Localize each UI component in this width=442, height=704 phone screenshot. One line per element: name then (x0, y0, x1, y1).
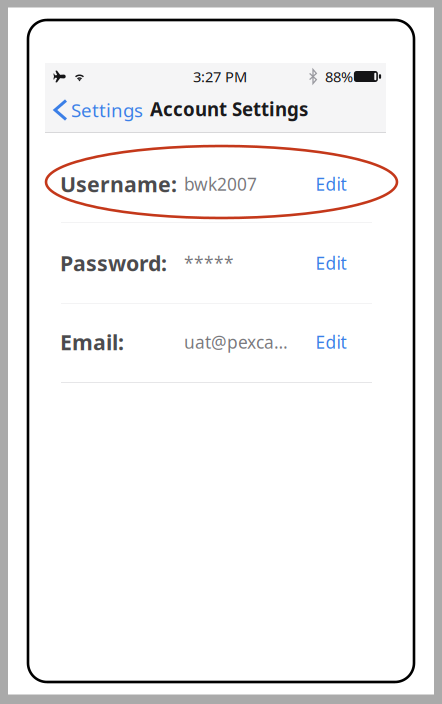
staticText: 3:27 PM (193, 67, 247, 86)
button[interactable]: Password: (0, 0, 442, 704)
staticText: Email: (60, 328, 124, 356)
button[interactable]: Settings (55, 92, 149, 128)
staticText: uat@pexca… (184, 330, 288, 353)
staticText: Account Settings (150, 97, 308, 121)
staticText: ***** (184, 251, 234, 274)
staticText: Edit (315, 330, 346, 353)
staticText: Username: (60, 170, 177, 198)
staticText: Settings (71, 98, 143, 122)
button[interactable]: Email: (0, 0, 442, 704)
staticText: 88% (325, 67, 353, 86)
staticText: Password: (60, 249, 167, 277)
staticText: Edit (315, 172, 346, 195)
staticText: bwk2007 (184, 172, 257, 195)
staticText: Edit (315, 251, 346, 274)
button[interactable]: Username: (0, 0, 442, 704)
